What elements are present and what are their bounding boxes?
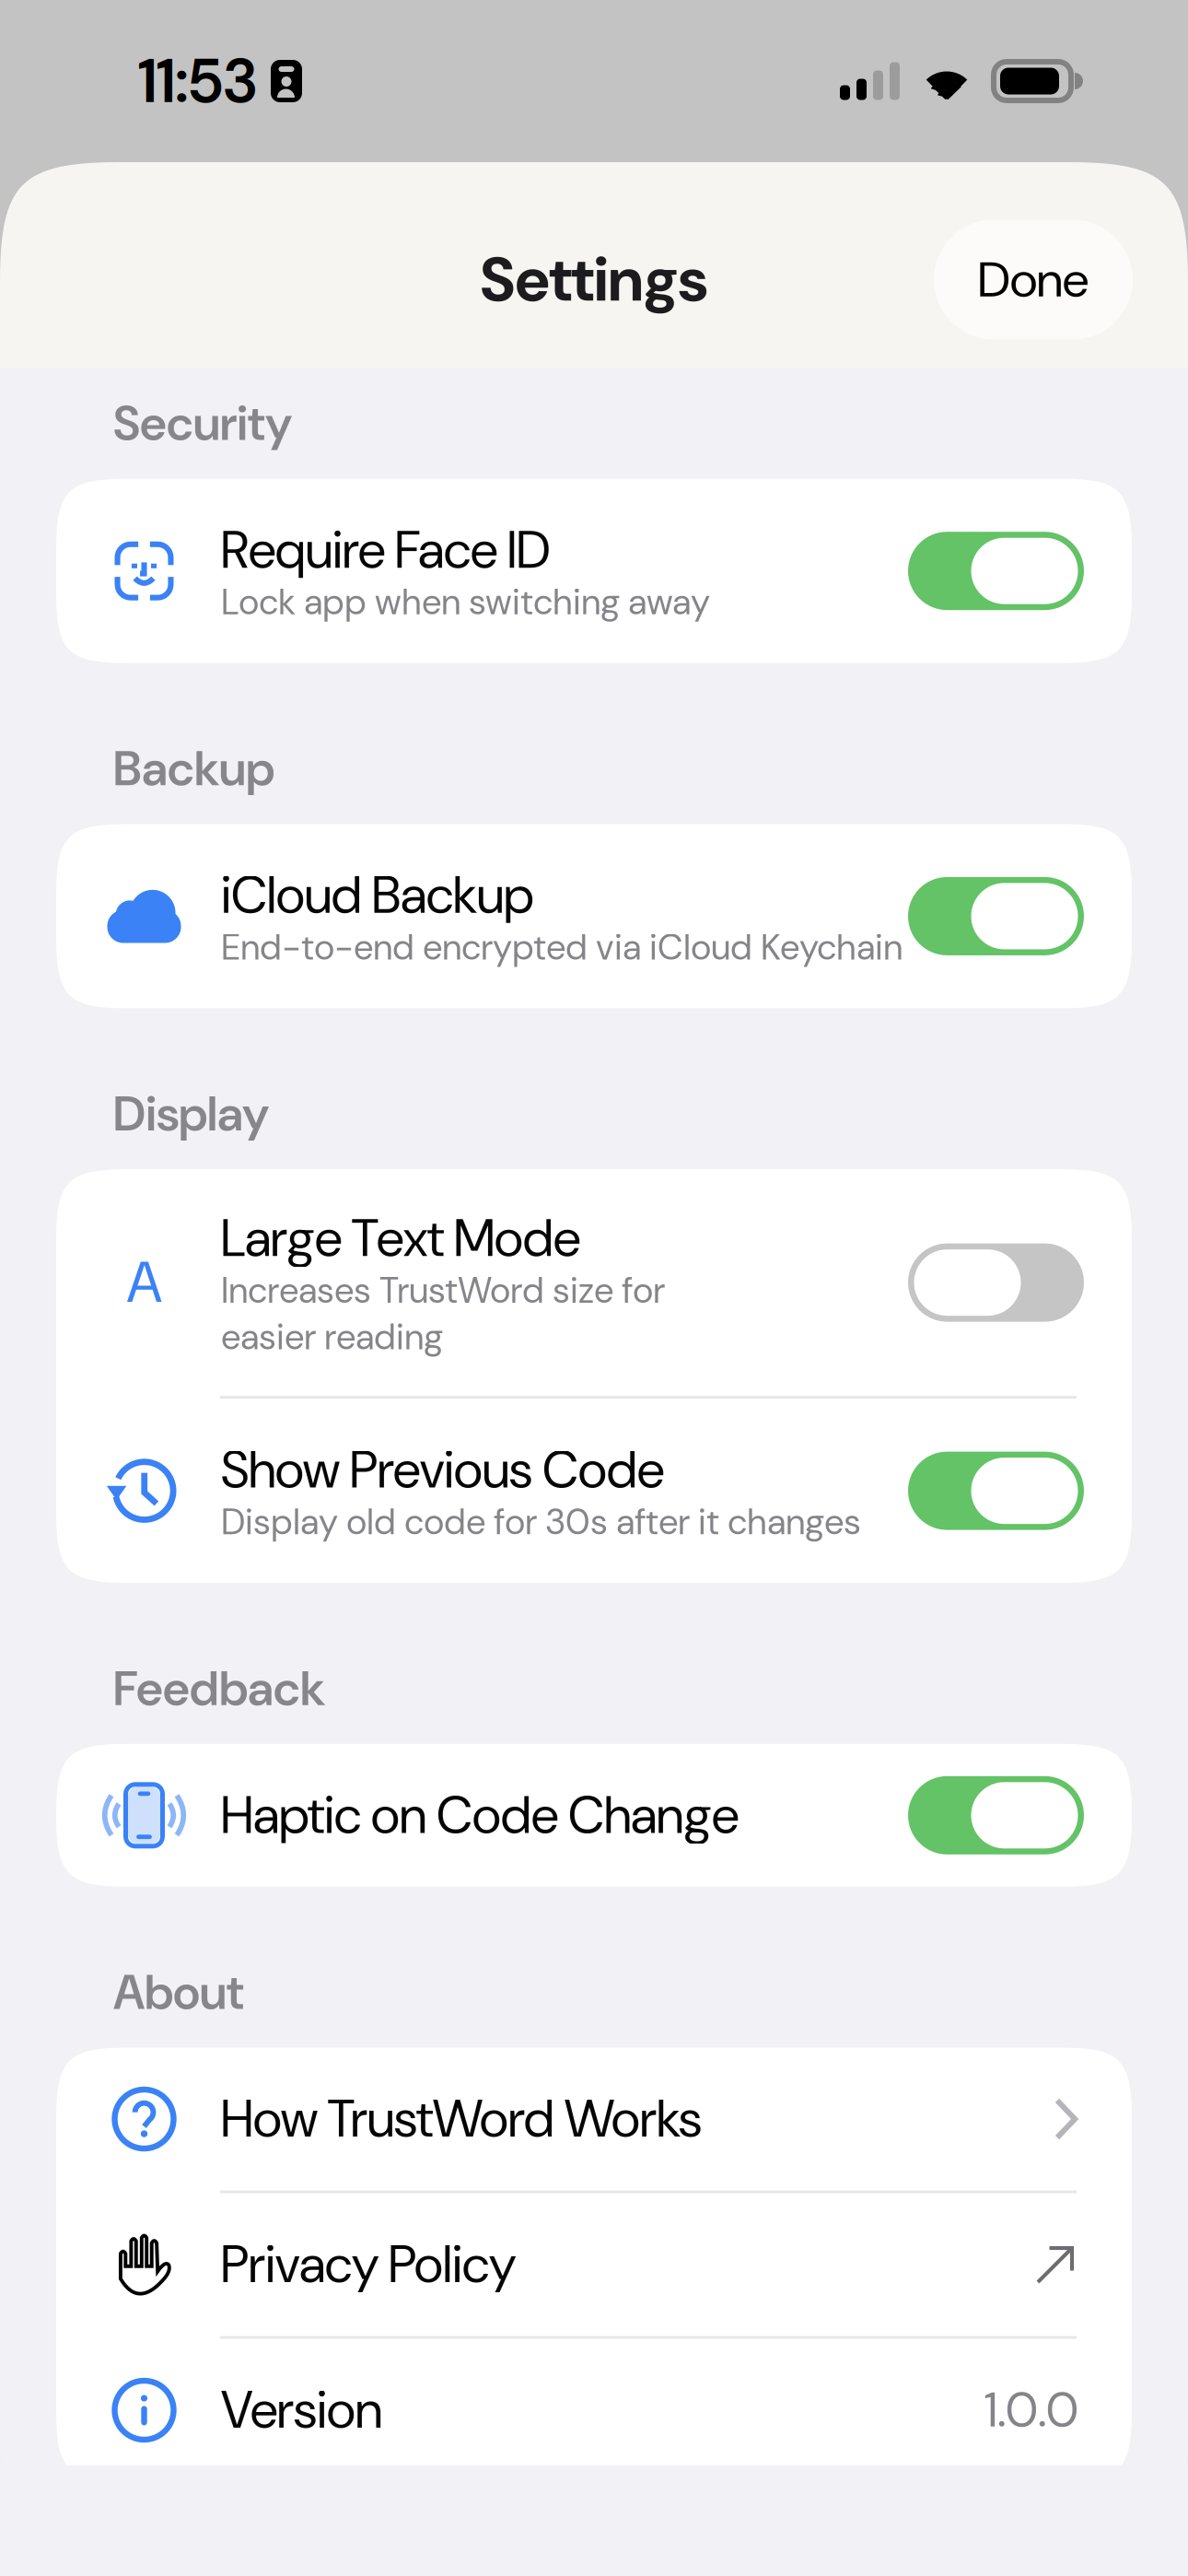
staticText: About bbox=[113, 1961, 244, 2024]
staticText: Version bbox=[221, 2377, 382, 2444]
button[interactable]: Version bbox=[56, 2339, 1132, 2482]
staticText: 1.0.0 bbox=[984, 2379, 1078, 2441]
staticText: Privacy Policy bbox=[221, 2231, 516, 2298]
button[interactable]: Show Previous Code bbox=[56, 1399, 1132, 1583]
staticText: 11:53 bbox=[138, 41, 257, 121]
staticText: Haptic on Code Change bbox=[221, 1782, 739, 1849]
button[interactable]: Require Face ID bbox=[56, 479, 1132, 663]
staticText: Large Text Mode bbox=[221, 1205, 580, 1272]
button[interactable]: Done bbox=[934, 220, 1133, 340]
staticText: Display bbox=[113, 1083, 269, 1145]
staticText: A bbox=[127, 1245, 162, 1320]
staticText: Increases TrustWord size for easier read… bbox=[221, 1267, 665, 1360]
staticText: Security bbox=[113, 392, 292, 455]
staticText: Done bbox=[978, 248, 1089, 312]
staticText: Settings bbox=[480, 240, 708, 320]
staticText: Backup bbox=[113, 738, 274, 800]
staticText: Require Face ID bbox=[221, 516, 551, 584]
staticText: Display old code for 30s after it change… bbox=[221, 1499, 861, 1545]
staticText: iCloud Backup bbox=[221, 862, 534, 929]
staticText: Show Previous Code bbox=[221, 1436, 664, 1503]
staticText: Lock app when switching away bbox=[221, 579, 710, 625]
button[interactable]: Haptic on Code Change bbox=[56, 1744, 1132, 1887]
staticText: Feedback bbox=[113, 1658, 325, 1720]
button[interactable]: iCloud Backup bbox=[56, 824, 1132, 1008]
staticText: How TrustWord Works bbox=[221, 2085, 702, 2153]
button[interactable]: How TrustWord Works bbox=[56, 2048, 1132, 2190]
button[interactable]: Privacy Policy bbox=[56, 2193, 1132, 2336]
button[interactable]: A bbox=[56, 1169, 1132, 1396]
staticText: End-to-end encrypted via iCloud Keychain bbox=[221, 924, 903, 971]
